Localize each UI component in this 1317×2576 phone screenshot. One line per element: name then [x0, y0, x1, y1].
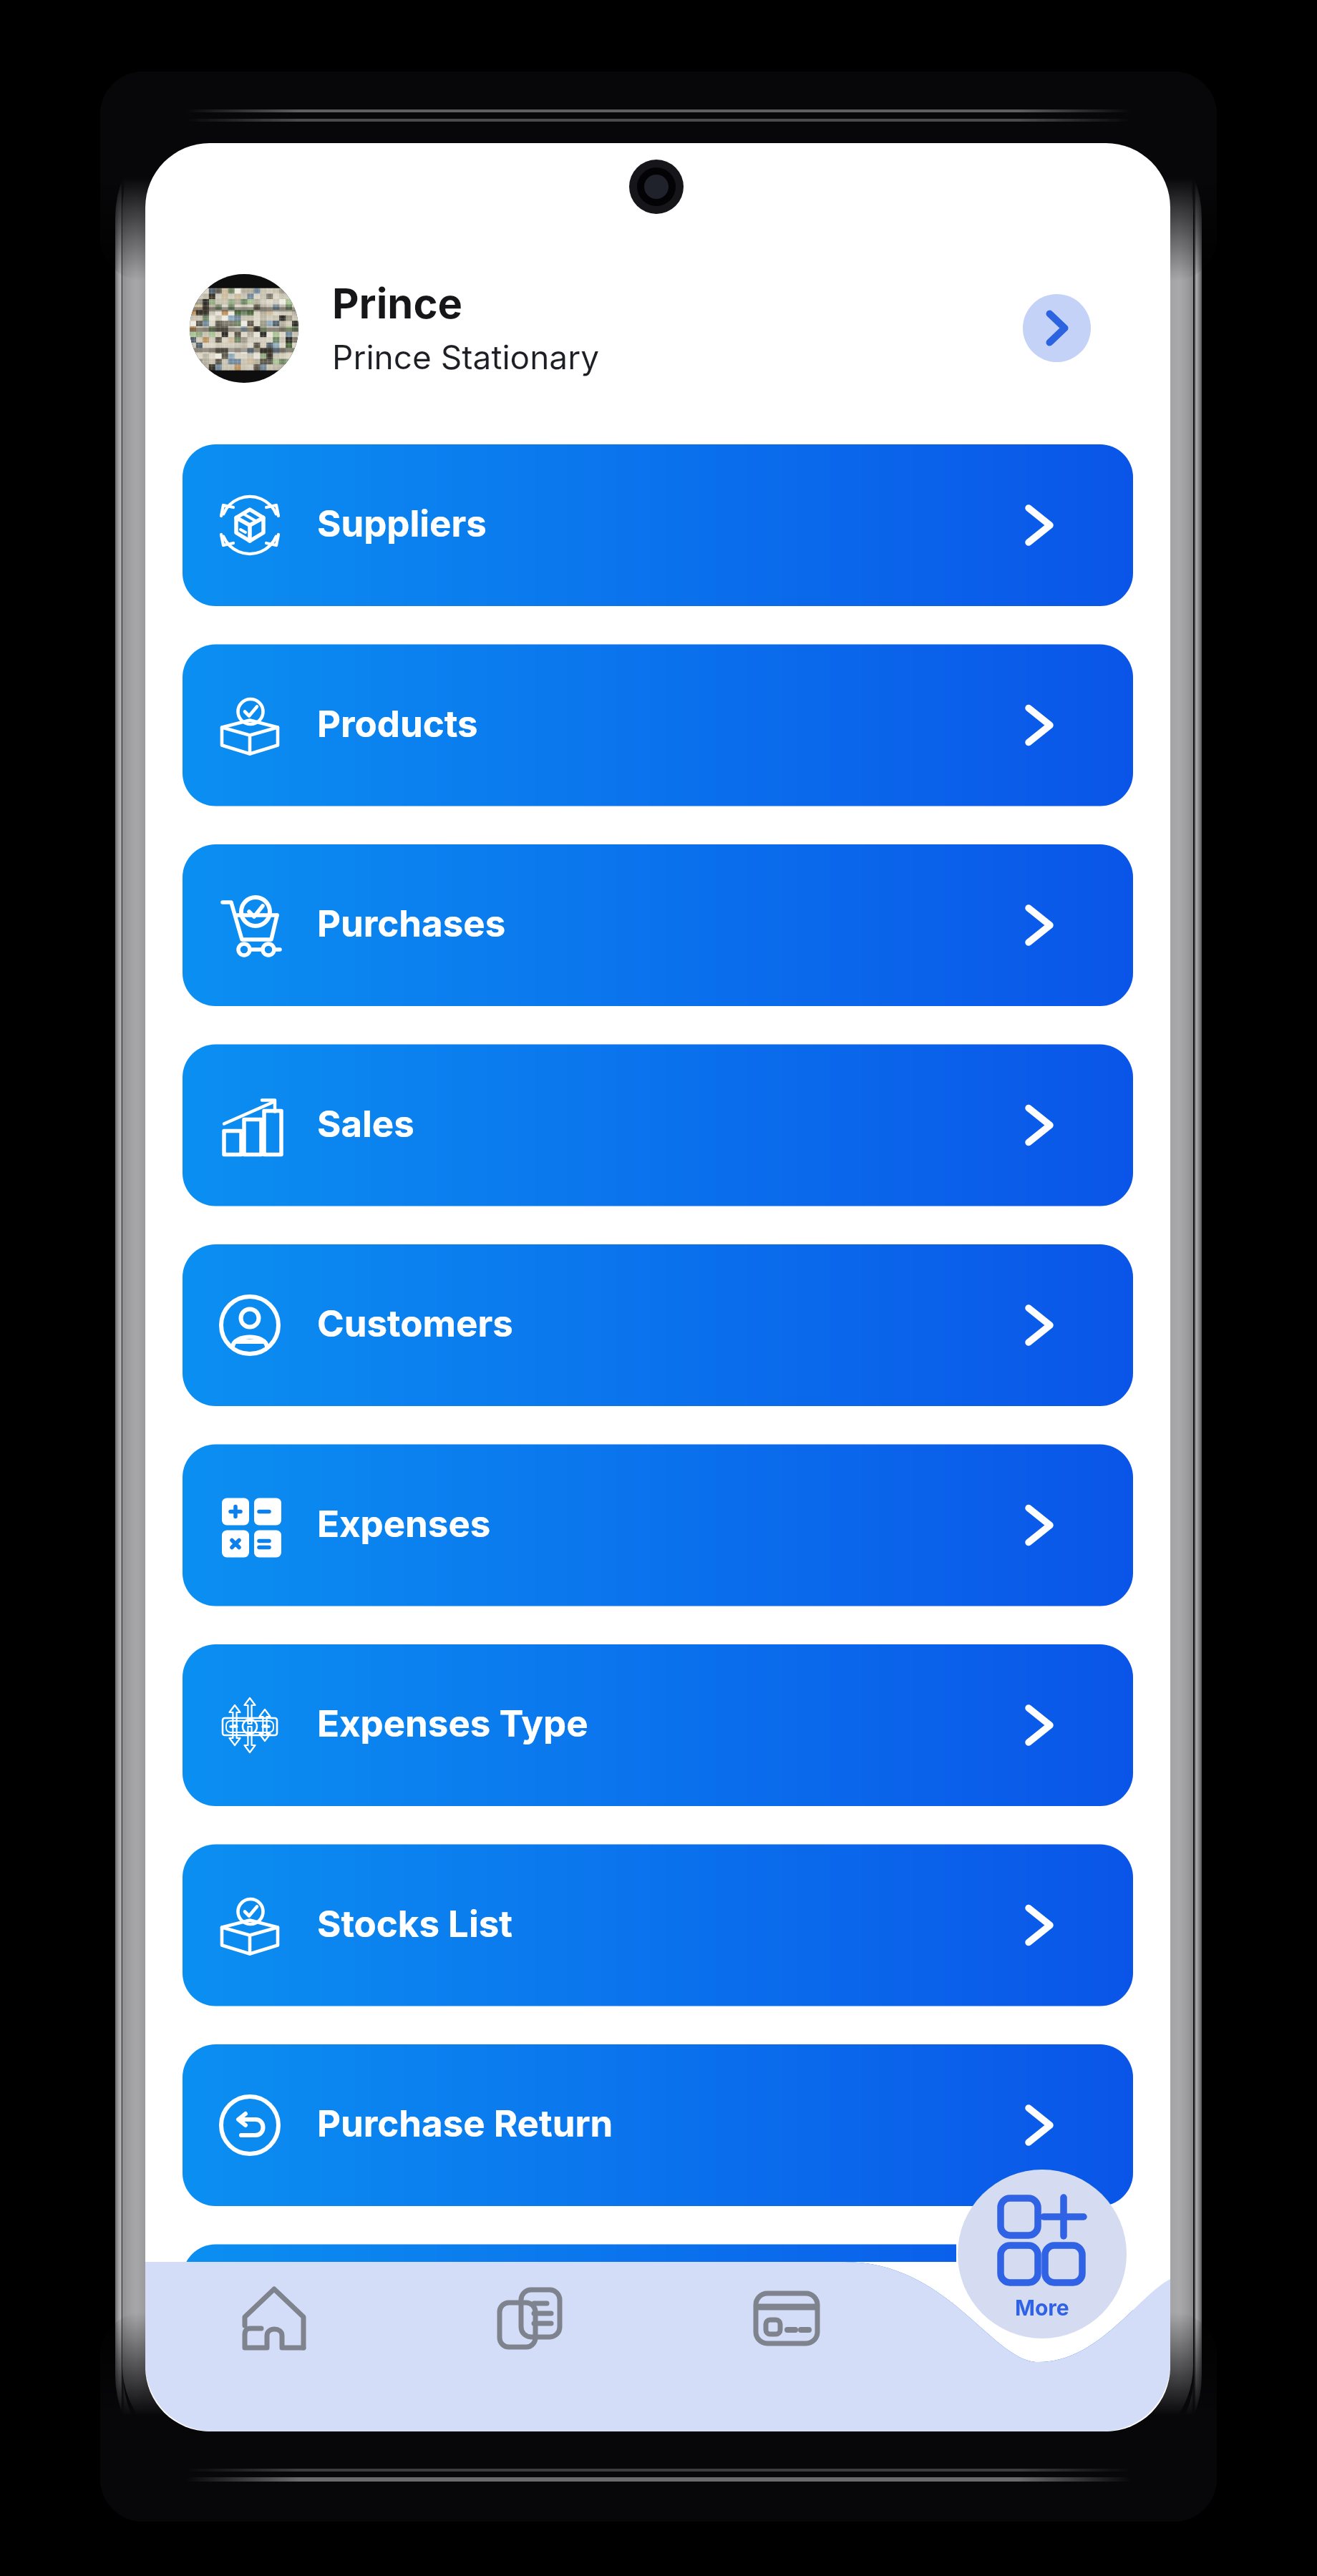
- staticText: Customers: [317, 1302, 513, 1346]
- button[interactable]: Stocks List: [183, 1845, 1133, 2006]
- staticText: Suppliers: [317, 502, 487, 546]
- button[interactable]: Open store profile: [1023, 294, 1091, 362]
- staticText: Prince: [332, 278, 463, 328]
- staticText: Purchases: [317, 902, 506, 946]
- button[interactable]: Expenses Type: [183, 1644, 1133, 1806]
- staticText: More: [1015, 2295, 1069, 2321]
- button[interactable]: Purchase Return: [183, 2044, 1133, 2206]
- button[interactable]: Home: [231, 2275, 317, 2361]
- staticText: Products: [317, 702, 478, 746]
- staticText: Sales Return: [317, 2302, 543, 2346]
- button[interactable]: Prince: [183, 268, 1013, 390]
- staticText: Prince Stationary: [332, 337, 600, 377]
- button[interactable]: Expenses: [183, 1445, 1133, 1606]
- button[interactable]: Suppliers: [183, 444, 1133, 606]
- button[interactable]: Products: [183, 645, 1133, 806]
- button[interactable]: Cards: [744, 2275, 830, 2361]
- staticText: Purchase Return: [317, 2102, 613, 2146]
- button[interactable]: Purchases: [183, 844, 1133, 1006]
- staticText: Expenses: [317, 1502, 491, 1546]
- staticText: Stocks List: [317, 1902, 512, 1946]
- button[interactable]: Customers: [183, 1244, 1133, 1406]
- staticText: Sales: [317, 1102, 414, 1146]
- button[interactable]: Documents: [487, 2275, 573, 2361]
- staticText: Expenses Type: [317, 1702, 588, 1746]
- button[interactable]: Sales Return: [183, 2245, 1133, 2406]
- button[interactable]: Sales: [183, 1045, 1133, 1206]
- button[interactable]: More options: [958, 2170, 1127, 2338]
